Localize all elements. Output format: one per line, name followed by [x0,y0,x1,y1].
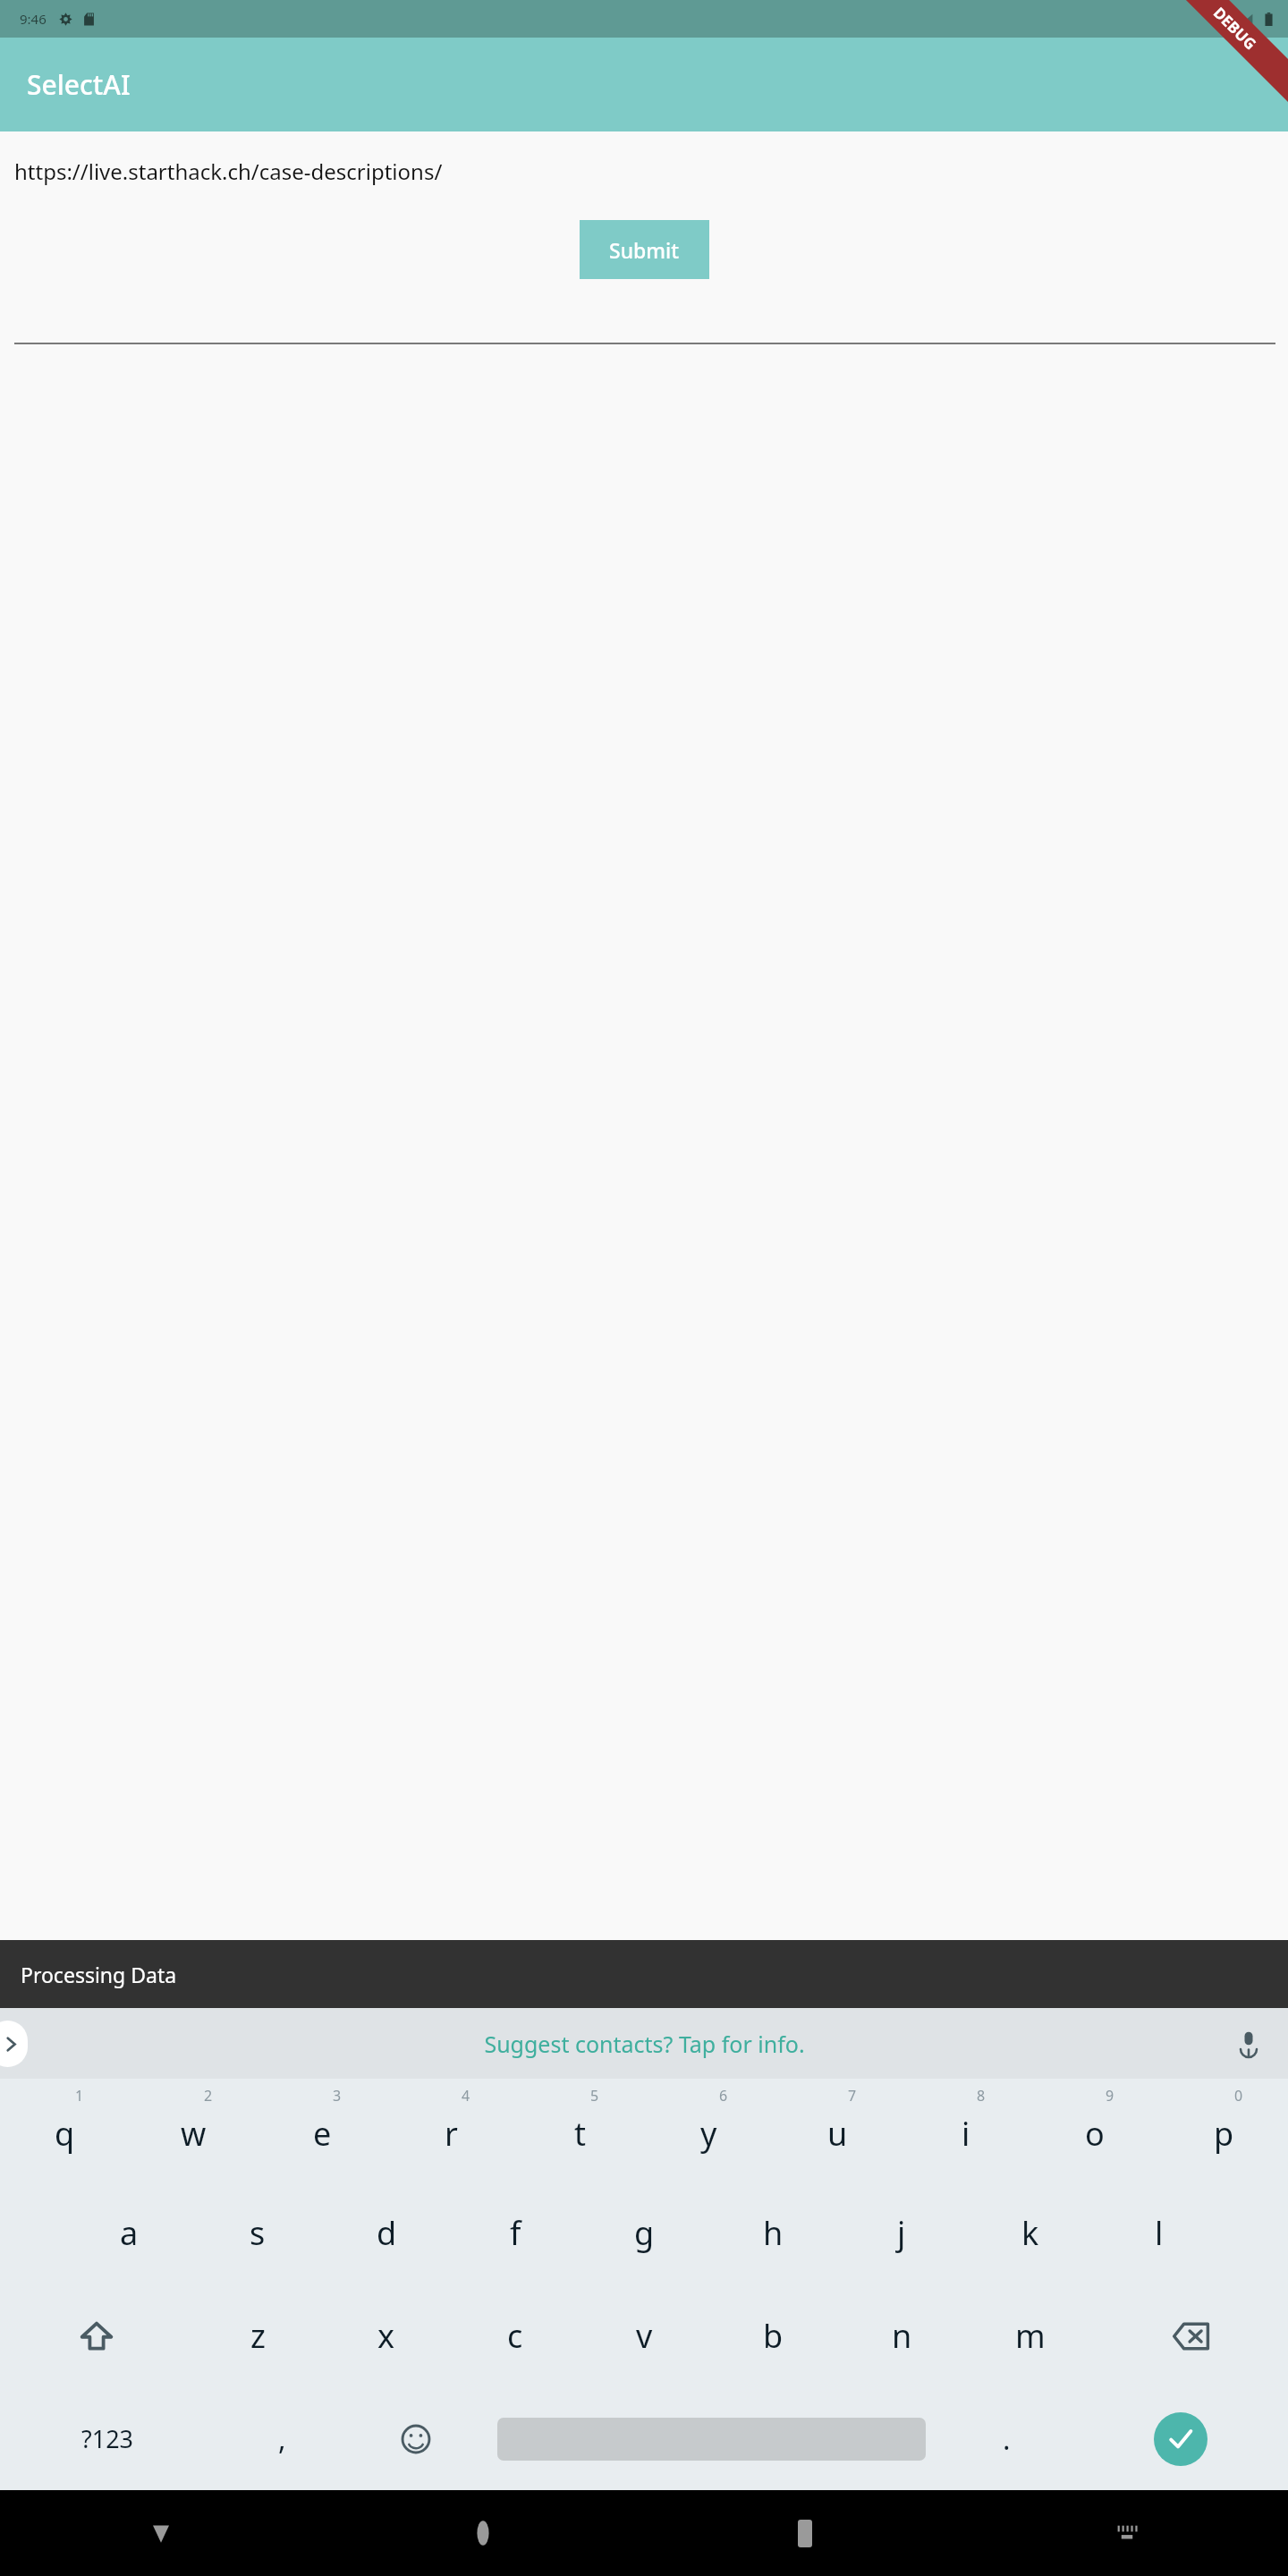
button[interactable]: a [64,2182,193,2284]
button[interactable]: z [193,2284,322,2387]
staticText: Submit [609,236,680,264]
button[interactable]: Backspace [1095,2284,1288,2387]
staticText: m [1015,2314,1046,2358]
staticText: l [1155,2211,1164,2255]
staticText: i [962,2112,970,2156]
button[interactable]: d [322,2182,451,2284]
button[interactable]: Enter [1073,2387,1288,2490]
button[interactable]: Expand suggestions [0,2021,28,2067]
button[interactable]: m [966,2284,1095,2387]
button[interactable]: Suggest contacts? Tap for info. [207,2008,1082,2079]
button[interactable]: l [1095,2182,1224,2284]
button[interactable]: Submit [580,220,709,279]
button[interactable]: n [837,2284,966,2387]
button[interactable]: 4 [386,2079,515,2182]
button[interactable]: v [580,2284,708,2387]
staticText: 9:46 [20,10,47,28]
staticText: 3 [333,2086,342,2106]
button[interactable]: Recents [644,2490,966,2576]
staticText: w [181,2112,207,2156]
staticText: h [763,2211,784,2255]
staticText: , [278,2419,286,2459]
staticText: 4 [462,2086,470,2106]
button[interactable]: . [939,2387,1073,2490]
staticText: c [507,2314,523,2358]
staticText: 7 [848,2086,857,2106]
staticText: DEBUG [1209,2,1261,54]
staticText: n [892,2314,912,2358]
button[interactable]: Space [483,2387,939,2490]
staticText: . [1003,2419,1011,2459]
staticText: g [634,2211,655,2255]
staticText: d [377,2211,397,2255]
staticText: z [250,2314,266,2358]
staticText: k [1021,2211,1039,2255]
staticText: SelectAI [27,66,131,103]
button[interactable]: 0 [1159,2079,1288,2182]
button[interactable]: Back [0,2490,322,2576]
staticText: x [377,2314,395,2358]
button[interactable]: 9 [1030,2079,1159,2182]
staticText: f [510,2211,521,2255]
staticText: o [1085,2112,1105,2156]
staticText: Suggest contacts? Tap for info. [484,2029,805,2059]
staticText: b [763,2314,784,2358]
button[interactable]: h [708,2182,837,2284]
button[interactable]: 5 [515,2079,644,2182]
staticText: r [445,2112,458,2156]
staticText: s [250,2211,266,2255]
staticText: 1 [75,2086,84,2106]
button[interactable]: ?123 [0,2387,215,2490]
button[interactable]: j [837,2182,966,2284]
button[interactable]: 2 [129,2079,258,2182]
button[interactable]: c [451,2284,580,2387]
staticText: t [574,2112,586,2156]
button[interactable]: Shift [0,2284,193,2387]
button[interactable]: 1 [0,2079,129,2182]
button[interactable]: k [966,2182,1095,2284]
button[interactable]: Home [322,2490,644,2576]
staticText: y [700,2112,717,2156]
staticText: u [827,2112,848,2156]
staticText: 8 [977,2086,986,2106]
button[interactable]: g [580,2182,708,2284]
button[interactable]: Voice input [1225,2021,1272,2067]
button[interactable]: 6 [644,2079,773,2182]
button[interactable]: 8 [902,2079,1030,2182]
staticText: v [636,2314,653,2358]
button[interactable]: 7 [773,2079,902,2182]
staticText: 2 [204,2086,213,2106]
staticText: 9 [1106,2086,1114,2106]
button[interactable]: Emoji [349,2387,483,2490]
staticText: 5 [590,2086,599,2106]
staticText: a [120,2211,139,2255]
button[interactable]: x [322,2284,451,2387]
button[interactable]: f [451,2182,580,2284]
staticText: 0 [1234,2086,1243,2106]
button[interactable]: b [708,2284,837,2387]
staticText: 6 [719,2086,728,2106]
staticText: q [55,2112,75,2156]
staticText: e [313,2112,332,2156]
staticText: https://live.starthack.ch/case-descripti… [14,157,443,186]
button[interactable]: Switch keyboard [966,2490,1288,2576]
button[interactable]: , [215,2387,349,2490]
button[interactable]: s [193,2182,322,2284]
staticText: Processing Data [21,1961,177,1988]
button[interactable]: 3 [258,2079,386,2182]
staticText: p [1214,2112,1234,2156]
staticText: ?123 [81,2422,134,2455]
staticText: j [897,2211,906,2255]
